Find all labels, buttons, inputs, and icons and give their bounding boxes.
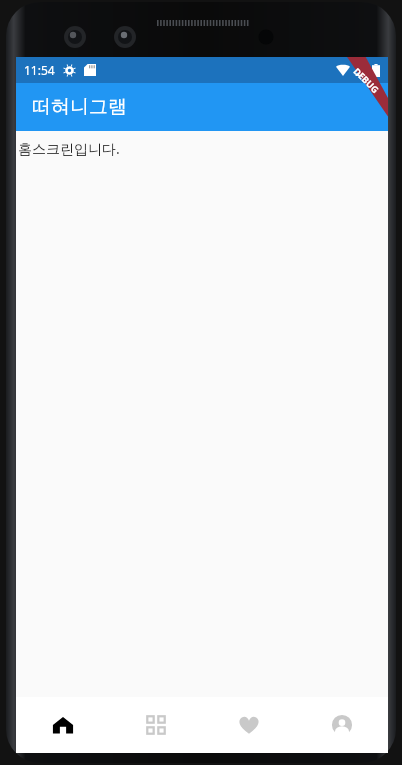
staticText: 11:54 bbox=[24, 62, 55, 78]
button[interactable]: Home bbox=[16, 697, 109, 753]
staticText: 떠혀니그램 bbox=[32, 95, 127, 119]
button[interactable]: Profile bbox=[295, 697, 388, 753]
button[interactable]: Likes bbox=[202, 697, 295, 753]
button[interactable]: Explore bbox=[109, 697, 202, 753]
staticText: DEBUG bbox=[351, 65, 382, 95]
staticText: 홈스크린입니다. bbox=[18, 139, 120, 158]
